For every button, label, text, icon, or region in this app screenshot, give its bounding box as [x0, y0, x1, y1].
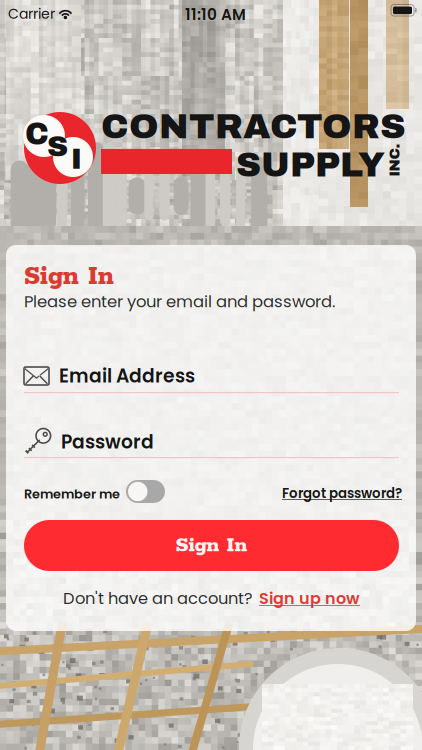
- staticText: Password: [61, 429, 154, 455]
- staticText: Carrier: [8, 4, 55, 24]
- staticText: C: [25, 117, 49, 151]
- button[interactable]: Forgot password?: [282, 484, 402, 503]
- staticText: CONTRACTORS: [101, 107, 406, 146]
- button[interactable]: Email Address: [24, 361, 398, 391]
- staticText: INC.: [378, 152, 411, 168]
- staticText: Sign up now: [259, 587, 360, 610]
- staticText: Please enter your email and password.: [24, 290, 335, 313]
- button[interactable]: Sign up now: [259, 587, 360, 610]
- staticText: Sign In: [175, 533, 247, 558]
- staticText: Sign In: [24, 261, 114, 293]
- button[interactable]: Password: [24, 427, 398, 457]
- staticText: I: [71, 143, 82, 175]
- staticText: Email Address: [59, 363, 195, 389]
- button[interactable]: [126, 480, 165, 503]
- staticText: 11:10 AM: [185, 4, 246, 25]
- staticText: Forgot password?: [282, 484, 402, 503]
- staticText: Don't have an account?: [63, 587, 253, 610]
- staticText: S: [47, 130, 68, 162]
- staticText: Remember me: [24, 485, 120, 503]
- staticText: SUPPLY: [236, 146, 385, 184]
- button[interactable]: Sign In: [24, 520, 399, 571]
